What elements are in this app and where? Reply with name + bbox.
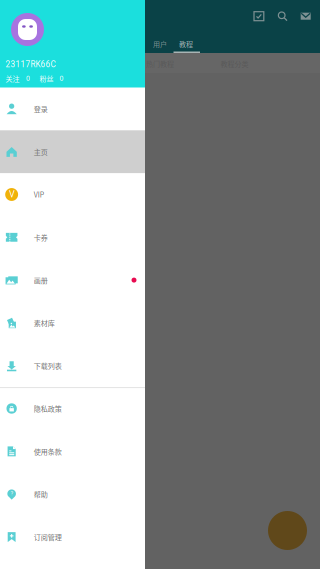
staticText: 画册	[34, 275, 48, 285]
button[interactable]: Search	[277, 11, 287, 21]
staticText: 登录	[34, 104, 48, 114]
staticText: 教程	[179, 39, 193, 49]
button[interactable]: 下载列表	[0, 344, 145, 387]
staticText: 下载列表	[34, 361, 62, 371]
staticText: 主页	[34, 147, 48, 157]
button[interactable]: 登录	[0, 87, 145, 130]
button[interactable]: V	[0, 173, 145, 216]
button[interactable]: Tasks	[253, 11, 264, 21]
button[interactable]: 卡券	[0, 216, 145, 259]
button[interactable]: 素材库	[0, 301, 145, 344]
staticText: 使用条款	[34, 446, 62, 456]
staticText: 隐私政策	[34, 403, 62, 414]
staticText: 卡券	[34, 232, 48, 242]
button[interactable]: 隐私政策	[0, 387, 145, 430]
button[interactable]: 用户	[147, 37, 173, 51]
staticText: 0	[26, 74, 30, 82]
staticText: 23117RK66C	[5, 59, 55, 69]
staticText: 热门教程	[146, 58, 174, 69]
button[interactable]: 教程	[173, 37, 199, 51]
staticText: VIP	[34, 189, 44, 200]
button[interactable]: Compose	[268, 511, 307, 550]
staticText: 用户	[153, 39, 167, 49]
staticText: 素材库	[34, 318, 55, 328]
button[interactable]: 主页	[0, 130, 145, 173]
button[interactable]: 订阅管理	[0, 515, 145, 558]
button[interactable]: 画册	[0, 259, 145, 301]
staticText: 订阅管理	[34, 532, 62, 542]
staticText: 帮助	[34, 489, 48, 499]
button[interactable]: ?	[0, 473, 145, 515]
staticText: 粉丝	[39, 73, 53, 83]
button[interactable]: Mail	[300, 11, 311, 21]
button[interactable]: 使用条款	[0, 430, 145, 473]
staticText: 关注	[5, 73, 19, 83]
staticText: V	[7, 185, 16, 203]
staticText: ?	[10, 487, 14, 498]
staticText: 教程分类	[220, 58, 248, 69]
staticText: 0	[59, 74, 63, 82]
